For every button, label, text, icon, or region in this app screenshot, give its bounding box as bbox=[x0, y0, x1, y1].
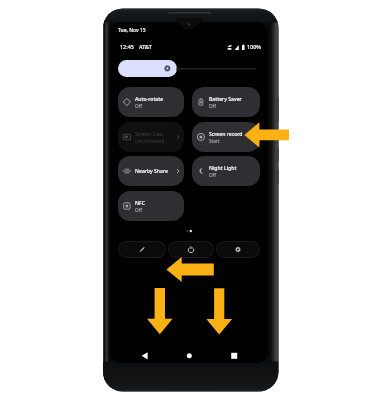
staticText: Battery Saver bbox=[209, 96, 242, 103]
staticText: Tue, Nov 15 bbox=[118, 27, 146, 34]
staticText: Unconnected bbox=[135, 138, 165, 144]
button[interactable]: Battery Saver bbox=[192, 87, 260, 117]
button[interactable]: Recents bbox=[226, 347, 244, 363]
button[interactable]: Back bbox=[137, 347, 155, 363]
button[interactable]: Night Light bbox=[192, 156, 260, 186]
staticText: Nearby Share bbox=[135, 168, 168, 175]
button[interactable]: Nearby Share bbox=[118, 156, 184, 186]
staticText: Off bbox=[135, 207, 142, 213]
button[interactable]: Screen record bbox=[192, 122, 260, 152]
button[interactable]: Brightness bbox=[118, 60, 177, 77]
staticText: Off bbox=[135, 103, 142, 109]
button[interactable]: NFC bbox=[118, 191, 184, 221]
staticText: NFC bbox=[135, 200, 145, 207]
staticText: Off bbox=[209, 172, 216, 178]
button[interactable]: Settings bbox=[216, 241, 260, 258]
staticText: Start bbox=[209, 138, 220, 144]
staticText: 12:45 bbox=[120, 43, 134, 50]
button[interactable]: Power bbox=[168, 241, 214, 258]
button[interactable]: Screen Cast bbox=[118, 122, 184, 152]
staticText: Night Light bbox=[209, 165, 237, 172]
button[interactable]: Home bbox=[181, 347, 199, 363]
button[interactable]: Auto-rotate bbox=[118, 87, 184, 117]
staticText: Auto-rotate bbox=[135, 96, 164, 103]
staticText: Off bbox=[209, 103, 216, 109]
staticText: Screen Cast bbox=[135, 131, 164, 138]
staticText: Screen record bbox=[209, 131, 243, 138]
staticText: AT&T bbox=[139, 43, 152, 50]
button[interactable]: Edit bbox=[118, 241, 166, 258]
staticText: 100% bbox=[247, 43, 261, 50]
